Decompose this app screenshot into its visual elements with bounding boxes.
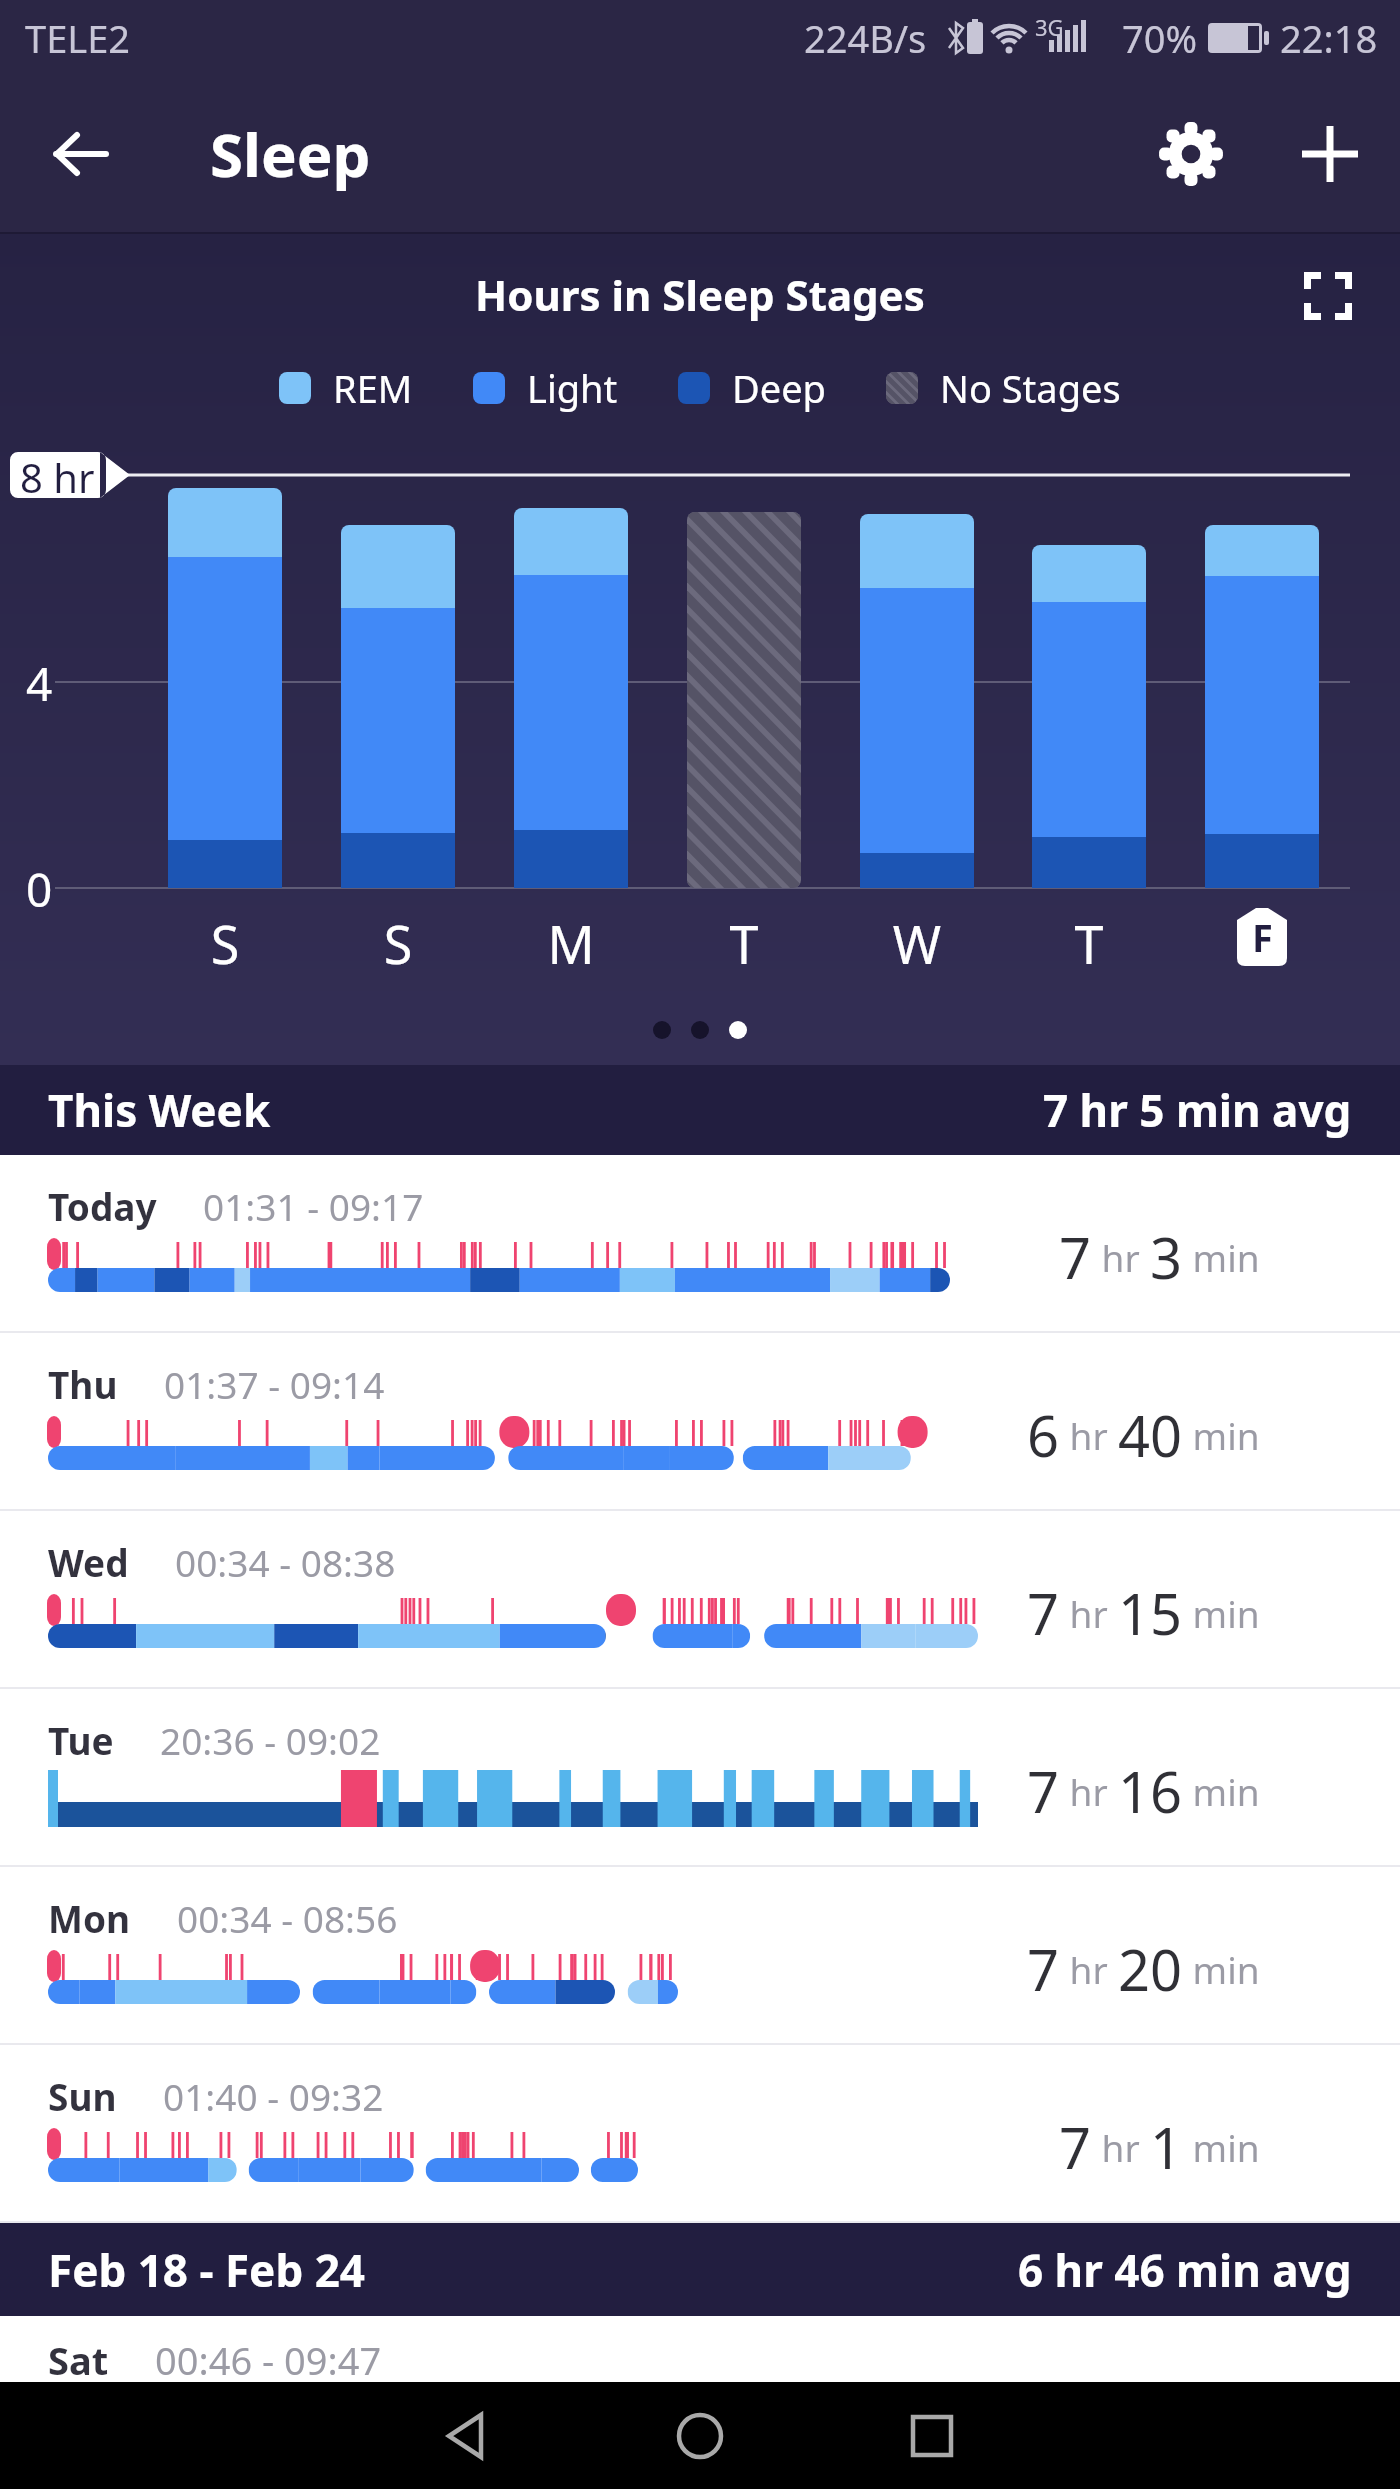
staticText: M — [531, 908, 611, 979]
staticText: T — [704, 908, 784, 979]
staticText: Deep — [732, 362, 826, 414]
button[interactable] — [1160, 123, 1222, 185]
button[interactable] — [445, 2413, 491, 2459]
staticText: 7 — [1027, 1931, 1060, 2007]
staticText: 70% — [1122, 12, 1198, 64]
staticText: 3 — [1150, 1219, 1183, 1295]
staticText: min — [1183, 1766, 1260, 1816]
button[interactable] — [56, 134, 108, 174]
staticText: hr — [1060, 1766, 1118, 1816]
staticText: Light — [527, 362, 618, 414]
staticText: 22:18 — [1280, 12, 1378, 64]
staticText: 01:31 - 09:17 — [203, 1181, 424, 1231]
button[interactable] — [677, 2413, 723, 2459]
staticText: hr — [1092, 2122, 1150, 2172]
staticText: 40 — [1118, 1397, 1183, 1473]
staticText: Mon — [48, 1893, 131, 1943]
staticText: 3G — [1035, 12, 1064, 42]
staticText: T — [1049, 908, 1129, 979]
staticText: min — [1183, 1944, 1260, 1994]
staticText: Wed — [48, 1537, 129, 1587]
staticText: 8 hr — [20, 450, 95, 504]
button[interactable]: Tue — [0, 1689, 1400, 1865]
staticText: 20:36 - 09:02 — [160, 1715, 381, 1765]
button[interactable]: Thu — [0, 1333, 1400, 1509]
staticText: hr — [1060, 1410, 1118, 1460]
staticText: hr — [1060, 1944, 1118, 1994]
button[interactable] — [1304, 272, 1352, 320]
staticText: 20 — [1118, 1931, 1183, 2007]
staticText: Feb 18 - Feb 24 — [48, 2240, 365, 2300]
staticText: Today — [48, 1181, 157, 1231]
staticText: No Stages — [940, 362, 1121, 414]
staticText: min — [1183, 1588, 1260, 1638]
staticText: 1 — [1150, 2109, 1183, 2185]
staticText: 7 — [1059, 1219, 1092, 1295]
staticText: 00:46 - 09:47 — [155, 2334, 382, 2386]
staticText: min — [1183, 2122, 1260, 2172]
staticText: Thu — [48, 1359, 118, 1409]
staticText: F — [1252, 911, 1273, 963]
staticText: 6 hr 46 min avg — [1018, 2240, 1352, 2300]
staticText: 0 — [26, 858, 53, 921]
staticText: 6 — [1027, 1397, 1060, 1473]
button[interactable] — [1302, 126, 1358, 182]
staticText: 7 hr 5 min avg — [1043, 1080, 1352, 1140]
staticText: 224B/s — [804, 12, 927, 64]
staticText: 00:34 - 08:56 — [177, 1893, 398, 1943]
button[interactable]: Sun — [0, 2045, 1400, 2221]
staticText: 16 — [1118, 1753, 1183, 1829]
staticText: Sun — [48, 2071, 117, 2121]
staticText: TELE2 — [25, 12, 131, 64]
staticText: 01:40 - 09:32 — [163, 2071, 384, 2121]
button[interactable]: Today — [0, 1155, 1400, 1331]
staticText: 15 — [1118, 1575, 1183, 1651]
staticText: min — [1183, 1232, 1260, 1282]
staticText: min — [1183, 1410, 1260, 1460]
staticText: 00:34 - 08:38 — [175, 1537, 396, 1587]
staticText: 4 — [26, 652, 53, 715]
staticText: S — [358, 908, 438, 979]
staticText: Sleep — [210, 113, 371, 195]
staticText: 01:37 - 09:14 — [164, 1359, 385, 1409]
button[interactable]: Wed — [0, 1511, 1400, 1687]
staticText: 7 — [1027, 1753, 1060, 1829]
staticText: REM — [333, 362, 413, 414]
staticText: hr — [1092, 1232, 1150, 1282]
button[interactable]: Mon — [0, 1867, 1400, 2043]
button[interactable] — [909, 2413, 955, 2459]
staticText: hr — [1060, 1588, 1118, 1638]
staticText: 7 — [1027, 1575, 1060, 1651]
staticText: Sat — [48, 2334, 109, 2386]
staticText: S — [185, 908, 265, 979]
staticText: Hours in Sleep Stages — [475, 266, 925, 323]
staticText: Tue — [48, 1715, 114, 1765]
staticText: This Week — [48, 1080, 271, 1140]
staticText: 7 — [1059, 2109, 1092, 2185]
staticText: W — [877, 908, 957, 979]
